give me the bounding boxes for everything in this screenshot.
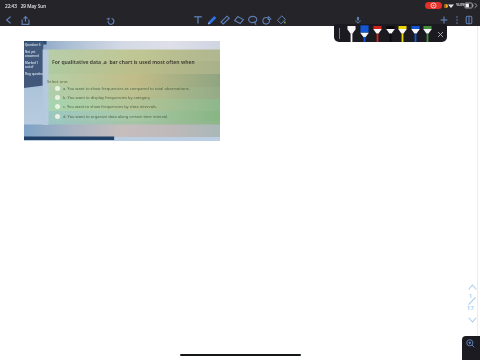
- button[interactable]: Fill: [274, 13, 287, 26]
- button[interactable]: Pen: [411, 25, 420, 42]
- staticText: Not yet: [25, 50, 36, 54]
- button[interactable]: Pen: [373, 25, 382, 42]
- button[interactable]: Pen: [360, 25, 369, 42]
- staticText: 1: [469, 292, 473, 300]
- button[interactable]: Zoom: [462, 336, 480, 360]
- staticText: Marked 1: [25, 61, 39, 65]
- button[interactable]: Lasso: [246, 13, 259, 26]
- button[interactable]: Close: [434, 28, 446, 40]
- button[interactable]: Text: [191, 13, 204, 26]
- staticText: a. You want to show frequencies as compa…: [63, 86, 190, 91]
- button[interactable]: Pages: [462, 13, 475, 26]
- button[interactable]: Undo: [103, 13, 117, 27]
- staticText: c. You want to show frequencies by class…: [63, 104, 157, 109]
- staticText: %39: [456, 2, 465, 8]
- button[interactable]: Shapes: [260, 13, 273, 26]
- staticText: Select one:: [47, 79, 69, 85]
- button[interactable]: Share: [18, 13, 32, 27]
- button[interactable]: Back: [2, 13, 16, 27]
- button[interactable]: Eraser: [232, 13, 245, 26]
- staticText: answered: [25, 54, 39, 58]
- button[interactable]: Voice note: [351, 13, 364, 26]
- staticText: 17: [467, 304, 474, 312]
- staticText: For qualitative data ,a bar chart is use…: [52, 59, 195, 66]
- button[interactable]: Pen: [423, 25, 432, 42]
- staticText: Question 6: [25, 43, 41, 47]
- staticText: Flag question: [25, 72, 44, 76]
- button[interactable]: Pen: [398, 25, 407, 42]
- staticText: 22:43 29 May Sun: [5, 3, 47, 9]
- button[interactable]: Add page: [437, 13, 450, 26]
- button[interactable]: Pen: [347, 25, 356, 42]
- staticText: out of: [25, 65, 34, 69]
- button[interactable]: Previous page: [466, 282, 478, 291]
- button[interactable]: Pen: [386, 25, 395, 42]
- button[interactable]: Highlighter: [218, 13, 231, 26]
- button[interactable]: More options: [450, 13, 463, 26]
- button[interactable]: Next page: [466, 315, 478, 324]
- button[interactable]: Pen: [205, 13, 218, 26]
- staticText: b. You want to display frequencies by ca…: [63, 95, 150, 100]
- staticText: d. You want to organize data along certa…: [63, 114, 169, 119]
